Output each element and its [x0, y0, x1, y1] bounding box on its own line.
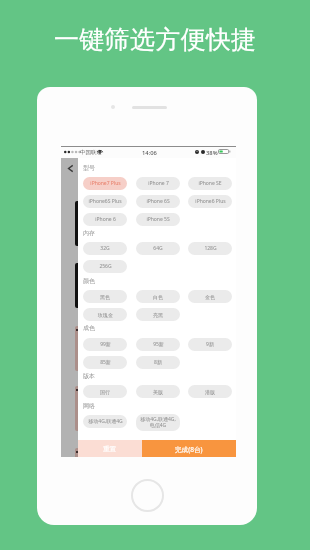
button[interactable]: 256G	[83, 260, 127, 273]
button[interactable]: Back	[61, 158, 78, 180]
button[interactable]: iPhone SE	[188, 177, 232, 190]
staticText: 玫瑰金	[98, 312, 113, 318]
button[interactable]: iPhone 7	[136, 177, 180, 190]
staticText: 64G	[153, 245, 163, 252]
staticText: 美版	[153, 389, 163, 395]
button[interactable]: 9新	[188, 338, 232, 351]
staticText: 亮黑	[153, 312, 163, 318]
staticText: 颜色	[83, 277, 95, 285]
staticText: 白色	[153, 294, 163, 300]
button[interactable]: 黑色	[83, 290, 127, 303]
button[interactable]: iPhone 6	[83, 213, 127, 226]
staticText: iPhone 5S	[146, 216, 170, 223]
staticText: 38%	[206, 149, 218, 157]
staticText: 金色	[205, 294, 215, 300]
staticText: 128G	[204, 245, 217, 252]
staticText: 32G	[100, 245, 110, 252]
button[interactable]: 玫瑰金	[83, 308, 127, 321]
staticText: 版本	[83, 372, 95, 380]
button[interactable]: 金色	[188, 290, 232, 303]
staticText: 内存	[83, 229, 95, 237]
button[interactable]: iPhone7 Plus	[83, 177, 127, 190]
button[interactable]: 95新	[136, 338, 180, 351]
staticText: iPhone6 Plus	[195, 198, 226, 205]
button[interactable]: iPhone6 Plus	[188, 195, 232, 208]
staticText: iPhone 6S	[146, 198, 170, 205]
button[interactable]: 8新	[136, 356, 180, 369]
staticText: 完成(8台)	[175, 445, 203, 454]
staticText: 移动4G,联通4G	[88, 418, 123, 425]
staticText: 型号	[83, 164, 95, 172]
staticText: 网络	[83, 402, 95, 410]
staticText: iPhone 6	[95, 216, 116, 223]
staticText: 港版	[205, 389, 215, 395]
staticText: 重置	[103, 445, 117, 453]
button[interactable]: 99新	[83, 338, 127, 351]
button[interactable]: 移动4G,联通4G, 电信4G	[136, 414, 180, 431]
staticText: 256G	[99, 263, 112, 270]
button[interactable]: iPhone6S Plus	[83, 195, 127, 208]
staticText: iPhone SE	[198, 180, 222, 187]
staticText: 黑色	[100, 294, 110, 300]
staticText: 8新	[154, 359, 162, 366]
button[interactable]: 移动4G,联通4G	[83, 415, 127, 428]
button[interactable]: 港版	[188, 385, 232, 398]
button[interactable]: 美版	[136, 385, 180, 398]
button[interactable]: iPhone 6S	[136, 195, 180, 208]
button[interactable]: 128G	[188, 242, 232, 255]
staticText: 85新	[100, 359, 111, 366]
staticText: 成色	[83, 324, 95, 332]
staticText: 14:06	[142, 149, 157, 157]
staticText: iPhone 7	[148, 180, 169, 187]
button[interactable]: 32G	[83, 242, 127, 255]
staticText: 9新	[206, 341, 214, 348]
staticText: 99新	[100, 341, 111, 348]
button[interactable]: 完成(8台)	[142, 440, 236, 457]
button[interactable]: 国行	[83, 385, 127, 398]
staticText: iPhone6S Plus	[88, 198, 122, 205]
button[interactable]: 重置	[78, 440, 142, 457]
staticText: 国行	[100, 389, 110, 395]
staticText: 移动4G,联通4G, 电信4G	[140, 416, 176, 429]
staticText: 中国联通	[80, 149, 102, 156]
button[interactable]: 白色	[136, 290, 180, 303]
button[interactable]: 85新	[83, 356, 127, 369]
button[interactable]: iPhone 5S	[136, 213, 180, 226]
button[interactable]: 64G	[136, 242, 180, 255]
staticText: 一键筛选方便快捷	[54, 24, 257, 55]
staticText: 95新	[153, 341, 164, 348]
staticText: iPhone7 Plus	[90, 180, 121, 187]
button[interactable]: 亮黑	[136, 308, 180, 321]
